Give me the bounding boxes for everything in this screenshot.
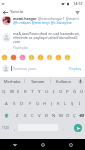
staticText: @h.mâşan @mermeyi @c.hüseyine: [13, 20, 72, 25]
button[interactable]: T: [29, 85, 36, 97]
button[interactable]: P: [64, 85, 71, 97]
staticText: V: [38, 112, 41, 118]
button[interactable]: C: [29, 109, 36, 121]
button[interactable]: Y: [36, 85, 43, 97]
button[interactable]: Emoji 6: [45, 53, 54, 62]
button[interactable]: M: [57, 109, 64, 121]
button[interactable]: G: [34, 97, 41, 109]
staticText: N: [52, 112, 56, 118]
button[interactable]: Tamam: [25, 77, 50, 85]
button[interactable]: İ: [76, 97, 83, 109]
staticText: G: [36, 100, 40, 106]
button[interactable]: L: [62, 97, 69, 109]
button[interactable]: Emoji 5: [36, 53, 45, 62]
staticText: maÅ,üzat!Sonuuhod en uzâ kazandıran,: [13, 31, 80, 36]
button[interactable]: Ö: [64, 109, 71, 121]
button[interactable]: Recents: [57, 139, 85, 150]
button[interactable]: W: [8, 85, 15, 97]
button[interactable]: Send: [70, 121, 85, 134]
staticText: Ş: [71, 100, 74, 106]
button[interactable]: Emoji 1: [0, 53, 9, 62]
button[interactable]: D: [18, 97, 26, 109]
staticText: @mamihasgor1 @mami: [38, 16, 79, 21]
staticText: mami.hasgor: [13, 16, 37, 21]
staticText: M: [59, 112, 63, 118]
button[interactable]: S: [10, 97, 18, 109]
button[interactable]: O: [57, 85, 64, 97]
staticText: I: [53, 88, 55, 94]
button[interactable]: Emoji 2: [9, 53, 18, 62]
button[interactable]: Paylaş: [68, 66, 83, 71]
staticText: Paylaşılan: [13, 45, 29, 49]
button[interactable]: I: [50, 85, 57, 97]
staticText: W: [10, 88, 14, 94]
staticText: Yanıtınızı yazın: [13, 66, 37, 71]
staticText: K: [57, 100, 60, 106]
button[interactable]: A: [2, 97, 10, 109]
button[interactable]: U: [43, 85, 50, 97]
button[interactable]: B: [43, 109, 50, 121]
staticText: Ö: [66, 112, 70, 118]
button[interactable]: F: [26, 97, 34, 109]
button[interactable]: Q: [0, 85, 8, 97]
staticText: Yanıtla: [10, 9, 24, 15]
button[interactable]: Ğ: [71, 85, 78, 97]
button[interactable]: Emoji 4: [27, 53, 36, 62]
button[interactable]: Back: [1, 8, 9, 16]
button[interactable]: N: [50, 109, 57, 121]
staticText: ?123: [2, 126, 9, 130]
button[interactable]: Emoji 7: [54, 53, 63, 62]
staticText: Z: [16, 112, 19, 118]
staticText: J: [51, 100, 53, 106]
button[interactable]: Ç: [71, 109, 78, 121]
button[interactable]: E: [15, 85, 22, 97]
staticText: İ: [79, 100, 81, 106]
button[interactable]: Emoji 3: [18, 53, 27, 62]
button[interactable]: K: [55, 97, 62, 109]
staticText: Y: [38, 88, 41, 94]
staticText: U: [45, 88, 49, 94]
button[interactable]: Yanıtınızı yazın: [13, 66, 68, 71]
button[interactable]: Shift: [0, 109, 13, 121]
button[interactable]: Reply: [74, 9, 81, 15]
button[interactable]: Kullanıcı: [51, 77, 76, 85]
staticText: ,: [14, 125, 16, 131]
button[interactable]: V: [36, 109, 43, 121]
staticText: ellerinde ve paylaşım altıcıl!donulhod2: [13, 35, 78, 40]
staticText: E: [17, 88, 20, 94]
staticText: B: [45, 112, 48, 118]
button[interactable]: Back: [0, 139, 29, 150]
staticText: Merhaba: [4, 79, 21, 84]
button[interactable]: Z: [13, 109, 21, 121]
button[interactable]: Home: [29, 139, 57, 150]
button[interactable]: Emoji 8: [63, 53, 72, 62]
staticText: Ü: [80, 88, 84, 94]
button[interactable]: H: [41, 97, 48, 109]
staticText: F: [29, 100, 32, 106]
staticText: Tamam: [31, 79, 45, 84]
staticText: O: [59, 88, 63, 94]
staticText: C: [31, 112, 34, 118]
staticText: Kullanıcı: [56, 79, 72, 84]
button[interactable]: Merhaba: [0, 77, 24, 85]
staticText: Q: [2, 88, 6, 94]
button[interactable]: Voice input: [76, 77, 85, 85]
staticText: S: [13, 100, 16, 106]
button[interactable]: X: [21, 109, 29, 121]
button[interactable]: Ü: [78, 85, 85, 97]
staticText: X: [24, 112, 27, 118]
staticText: R: [24, 88, 27, 94]
staticText: Paylaş: [69, 66, 82, 71]
staticText: 14:57: [73, 1, 83, 6]
button[interactable]: ?123: [0, 121, 11, 134]
staticText: H: [43, 100, 47, 106]
button[interactable]: Backspace: [78, 109, 85, 121]
button[interactable]: Ş: [69, 97, 76, 109]
button[interactable]: J: [48, 97, 55, 109]
staticText: P: [66, 88, 69, 94]
button[interactable]: R: [22, 85, 29, 97]
staticText: D: [20, 100, 24, 106]
button[interactable]: ,: [11, 121, 18, 134]
